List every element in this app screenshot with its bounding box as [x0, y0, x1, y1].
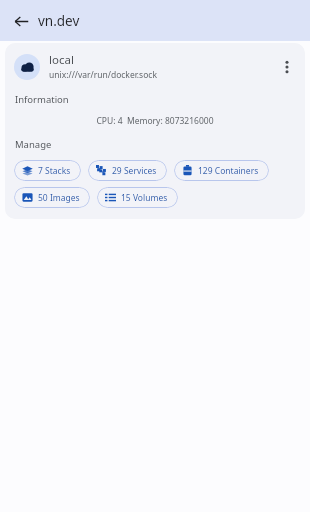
- button[interactable]: More options: [273, 53, 301, 81]
- staticText: 15 Volumes: [121, 192, 168, 204]
- staticText: CPU: 4 Memory: 8073216000: [5, 115, 305, 127]
- staticText: Manage: [15, 138, 52, 151]
- button[interactable]: 129 Containers: [174, 160, 269, 181]
- staticText: local: [49, 52, 74, 68]
- staticText: vn.dev: [38, 12, 80, 30]
- staticText: 7 Stacks: [38, 165, 71, 177]
- staticText: 129 Containers: [198, 165, 259, 177]
- button[interactable]: Back: [6, 6, 36, 36]
- button[interactable]: 15 Volumes: [97, 187, 178, 208]
- staticText: unix:///var/run/docker.sock: [49, 69, 157, 81]
- staticText: 29 Services: [112, 165, 157, 177]
- button[interactable]: 50 Images: [14, 187, 90, 208]
- button[interactable]: 29 Services: [88, 160, 167, 181]
- staticText: Information: [15, 93, 69, 106]
- button[interactable]: local: [5, 52, 305, 81]
- staticText: 50 Images: [38, 192, 80, 204]
- button[interactable]: 7 Stacks: [14, 160, 81, 181]
